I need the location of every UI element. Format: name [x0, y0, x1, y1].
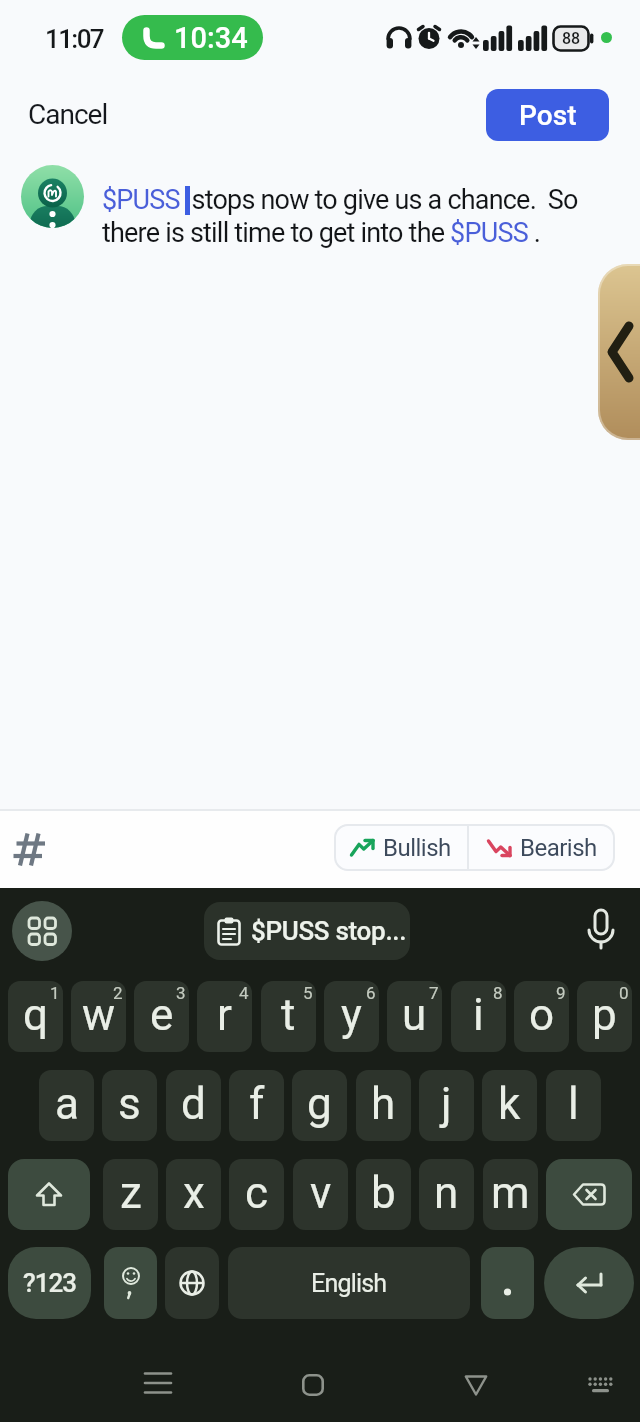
button[interactable]: w	[71, 981, 126, 1052]
button[interactable]: Post	[486, 89, 609, 141]
button[interactable]	[587, 1376, 614, 1395]
staticText: u	[402, 989, 427, 1041]
button[interactable]	[302, 1374, 324, 1396]
button[interactable]: j	[419, 1070, 474, 1141]
staticText: 3	[176, 983, 186, 1003]
button[interactable]: English	[228, 1247, 470, 1319]
button[interactable]: $PUSS stop...	[204, 902, 410, 960]
staticText: p	[592, 989, 617, 1041]
staticText: v	[310, 1167, 332, 1219]
button[interactable]: f	[229, 1070, 284, 1141]
button[interactable]: k	[482, 1070, 537, 1141]
button[interactable]: e	[134, 981, 189, 1052]
staticText: 1	[50, 983, 60, 1003]
staticText: k	[498, 1078, 521, 1130]
button[interactable]: d	[166, 1070, 221, 1141]
staticText: l	[568, 1078, 579, 1130]
staticText: ?123	[23, 1268, 76, 1298]
button[interactable]: a	[39, 1070, 94, 1141]
staticText: h	[371, 1078, 396, 1130]
button[interactable]: n	[419, 1159, 474, 1230]
staticText: 9	[556, 983, 566, 1003]
staticText: e	[150, 989, 174, 1041]
staticText: 6	[366, 983, 376, 1003]
staticText: g	[307, 1078, 332, 1130]
staticText: Post	[519, 99, 577, 132]
button[interactable]	[21, 165, 84, 228]
button[interactable]: 10:34	[122, 15, 263, 60]
button[interactable]: p	[577, 981, 632, 1052]
staticText: 88	[562, 29, 581, 48]
button[interactable]: ?123	[8, 1247, 91, 1319]
button[interactable]	[8, 1159, 90, 1230]
staticText: 7	[429, 983, 439, 1003]
button[interactable]	[544, 1247, 634, 1319]
staticText: t	[281, 989, 296, 1041]
button[interactable]	[165, 1247, 219, 1319]
button[interactable]	[464, 1375, 488, 1396]
staticText: z	[120, 1167, 142, 1219]
staticText: 5	[303, 983, 313, 1003]
button[interactable]	[598, 264, 640, 440]
button[interactable]	[104, 1247, 157, 1319]
staticText: a	[55, 1078, 79, 1130]
staticText: 10:34	[174, 21, 248, 55]
staticText: n	[434, 1167, 459, 1219]
button[interactable]	[0, 811, 70, 888]
staticText: m	[491, 1167, 530, 1219]
button[interactable]: l	[546, 1070, 601, 1141]
staticText: Cancel	[28, 98, 108, 131]
button[interactable]: c	[229, 1159, 284, 1230]
button[interactable]: y	[324, 981, 379, 1052]
button[interactable]: x	[166, 1159, 221, 1230]
staticText: s	[118, 1078, 141, 1130]
button[interactable]	[546, 1159, 632, 1230]
button[interactable]: u	[387, 981, 442, 1052]
button[interactable]: Cancel	[18, 88, 128, 140]
staticText: $PUSS stop...	[251, 916, 407, 946]
button[interactable]: o	[514, 981, 569, 1052]
button[interactable]: g	[292, 1070, 347, 1141]
staticText: $PUSS stops now to give us a chance. So …	[102, 184, 640, 249]
button[interactable]: q	[8, 981, 63, 1052]
button[interactable]: h	[356, 1070, 411, 1141]
staticText: r	[217, 989, 232, 1041]
button[interactable]: Bearish	[469, 824, 615, 871]
button[interactable]: r	[197, 981, 252, 1052]
staticText: b	[371, 1167, 396, 1219]
button[interactable]: b	[356, 1159, 411, 1230]
staticText: y	[341, 989, 362, 1041]
staticText: 4	[239, 983, 249, 1003]
staticText: 11:07	[45, 24, 104, 54]
button[interactable]: v	[293, 1159, 348, 1230]
staticText: Bearish	[520, 834, 597, 862]
staticText: f	[249, 1078, 265, 1130]
staticText: 2	[113, 983, 123, 1003]
button[interactable]	[12, 901, 72, 961]
button[interactable]: t	[261, 981, 316, 1052]
button[interactable]	[145, 1372, 171, 1394]
staticText: o	[529, 989, 555, 1041]
staticText: w	[82, 989, 116, 1041]
button[interactable]: s	[102, 1070, 157, 1141]
staticText: English	[311, 1269, 387, 1298]
staticText: c	[245, 1167, 269, 1219]
button[interactable]: i	[451, 981, 506, 1052]
staticText: d	[181, 1078, 206, 1130]
button[interactable]: z	[103, 1159, 158, 1230]
staticText: q	[23, 989, 49, 1041]
button[interactable]	[584, 900, 618, 960]
button[interactable]: Bullish	[334, 824, 467, 871]
staticText: j	[441, 1078, 452, 1130]
staticText: Bullish	[383, 834, 451, 862]
button[interactable]: m	[483, 1159, 538, 1230]
staticText: x	[183, 1167, 205, 1219]
staticText: 8	[493, 983, 503, 1003]
staticText: i	[473, 989, 484, 1041]
button[interactable]	[481, 1247, 534, 1319]
staticText: 0	[619, 983, 629, 1003]
